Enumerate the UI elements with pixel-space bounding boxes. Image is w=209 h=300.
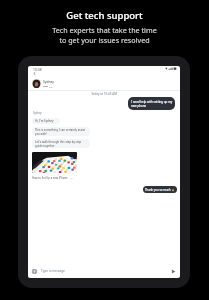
staticText: Thank you so much 🙏 — [145, 188, 175, 192]
staticText: Sydney — [33, 111, 42, 115]
staticText: Tech experts that take the time to get y… — [0, 25, 209, 45]
staticText: Hi, I'm Sydney — [35, 119, 54, 123]
staticText: Sydney — [43, 80, 54, 84]
button[interactable]: Send — [171, 269, 176, 274]
button[interactable]: This is something I can certainly assist… — [32, 127, 90, 136]
button[interactable]: Back — [32, 71, 37, 76]
staticText: Today at 10:45 AM — [28, 92, 180, 96]
staticText: Get tech support — [0, 9, 209, 22]
staticText: Let's walk through this step by step gui… — [35, 140, 82, 148]
button[interactable]: Let's walk through this step by step gui… — [32, 139, 90, 148]
staticText: Type a message — [41, 269, 65, 273]
button[interactable]: Thank you so much 🙏 — [143, 186, 177, 193]
button[interactable]: Sydney — [32, 79, 54, 88]
staticText: 10:48 — [33, 67, 42, 72]
staticText: I need help with setting up my new phone — [131, 100, 173, 108]
button[interactable]: How to Set Up a new iPhone — [32, 152, 94, 180]
staticText: 4.9 — [49, 85, 53, 88]
staticText: This is something I can certainly assist… — [35, 128, 86, 136]
staticText: How to Set Up a new iPhone — [32, 176, 68, 180]
button[interactable]: Hi, I'm Sydney — [32, 118, 60, 124]
button[interactable]: Add attachment — [32, 269, 37, 274]
button[interactable]: I need help with setting up my new phone — [128, 97, 175, 110]
